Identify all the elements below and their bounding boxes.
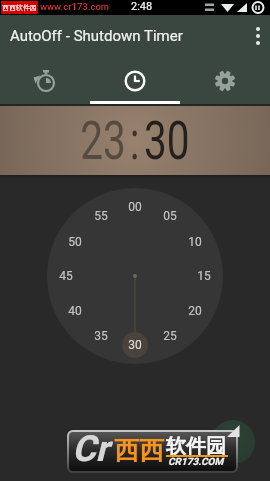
- staticText: 西西软件园: [2, 3, 37, 12]
- button[interactable]: 10: [181, 234, 209, 250]
- button[interactable]: [90, 57, 180, 104]
- button[interactable]: 40: [61, 303, 89, 319]
- staticText: 软件园: [166, 434, 226, 459]
- button[interactable]: [180, 57, 270, 104]
- staticText: 25: [163, 329, 177, 343]
- staticText: 00: [128, 200, 142, 214]
- button[interactable]: 35: [87, 328, 115, 344]
- staticText: www.cr173.com: [40, 1, 110, 12]
- button[interactable]: 50: [61, 234, 89, 250]
- staticText: 05: [163, 209, 177, 223]
- staticText: 35: [94, 329, 108, 343]
- staticText: AutoOff - Shutdown Timer: [10, 27, 183, 45]
- button[interactable]: 30: [121, 337, 149, 353]
- staticText: 15: [197, 269, 211, 283]
- button[interactable]: 55: [87, 208, 115, 224]
- staticText: 55: [94, 209, 108, 223]
- button[interactable]: [211, 420, 255, 464]
- button[interactable]: 00: [121, 199, 149, 215]
- staticText: 45: [59, 269, 73, 283]
- staticText: CR173.COM: [168, 456, 224, 468]
- staticText: 2:48: [131, 0, 153, 13]
- staticText: Cr: [72, 428, 109, 470]
- staticText: 西西: [114, 435, 164, 466]
- staticText: 20: [188, 304, 202, 318]
- button[interactable]: [244, 15, 270, 57]
- button[interactable]: 15: [190, 268, 218, 284]
- button[interactable]: 25: [156, 328, 184, 344]
- button[interactable]: 05: [156, 208, 184, 224]
- button[interactable]: [0, 57, 90, 104]
- button[interactable]: 30: [144, 109, 190, 172]
- button[interactable]: 23: [80, 109, 126, 172]
- staticText: 10: [188, 235, 202, 249]
- staticText: 50: [68, 235, 82, 249]
- staticText: 40: [68, 304, 82, 318]
- staticText: :: [130, 109, 140, 172]
- button[interactable]: 45: [52, 268, 80, 284]
- staticText: 30: [128, 338, 142, 352]
- button[interactable]: 20: [181, 303, 209, 319]
